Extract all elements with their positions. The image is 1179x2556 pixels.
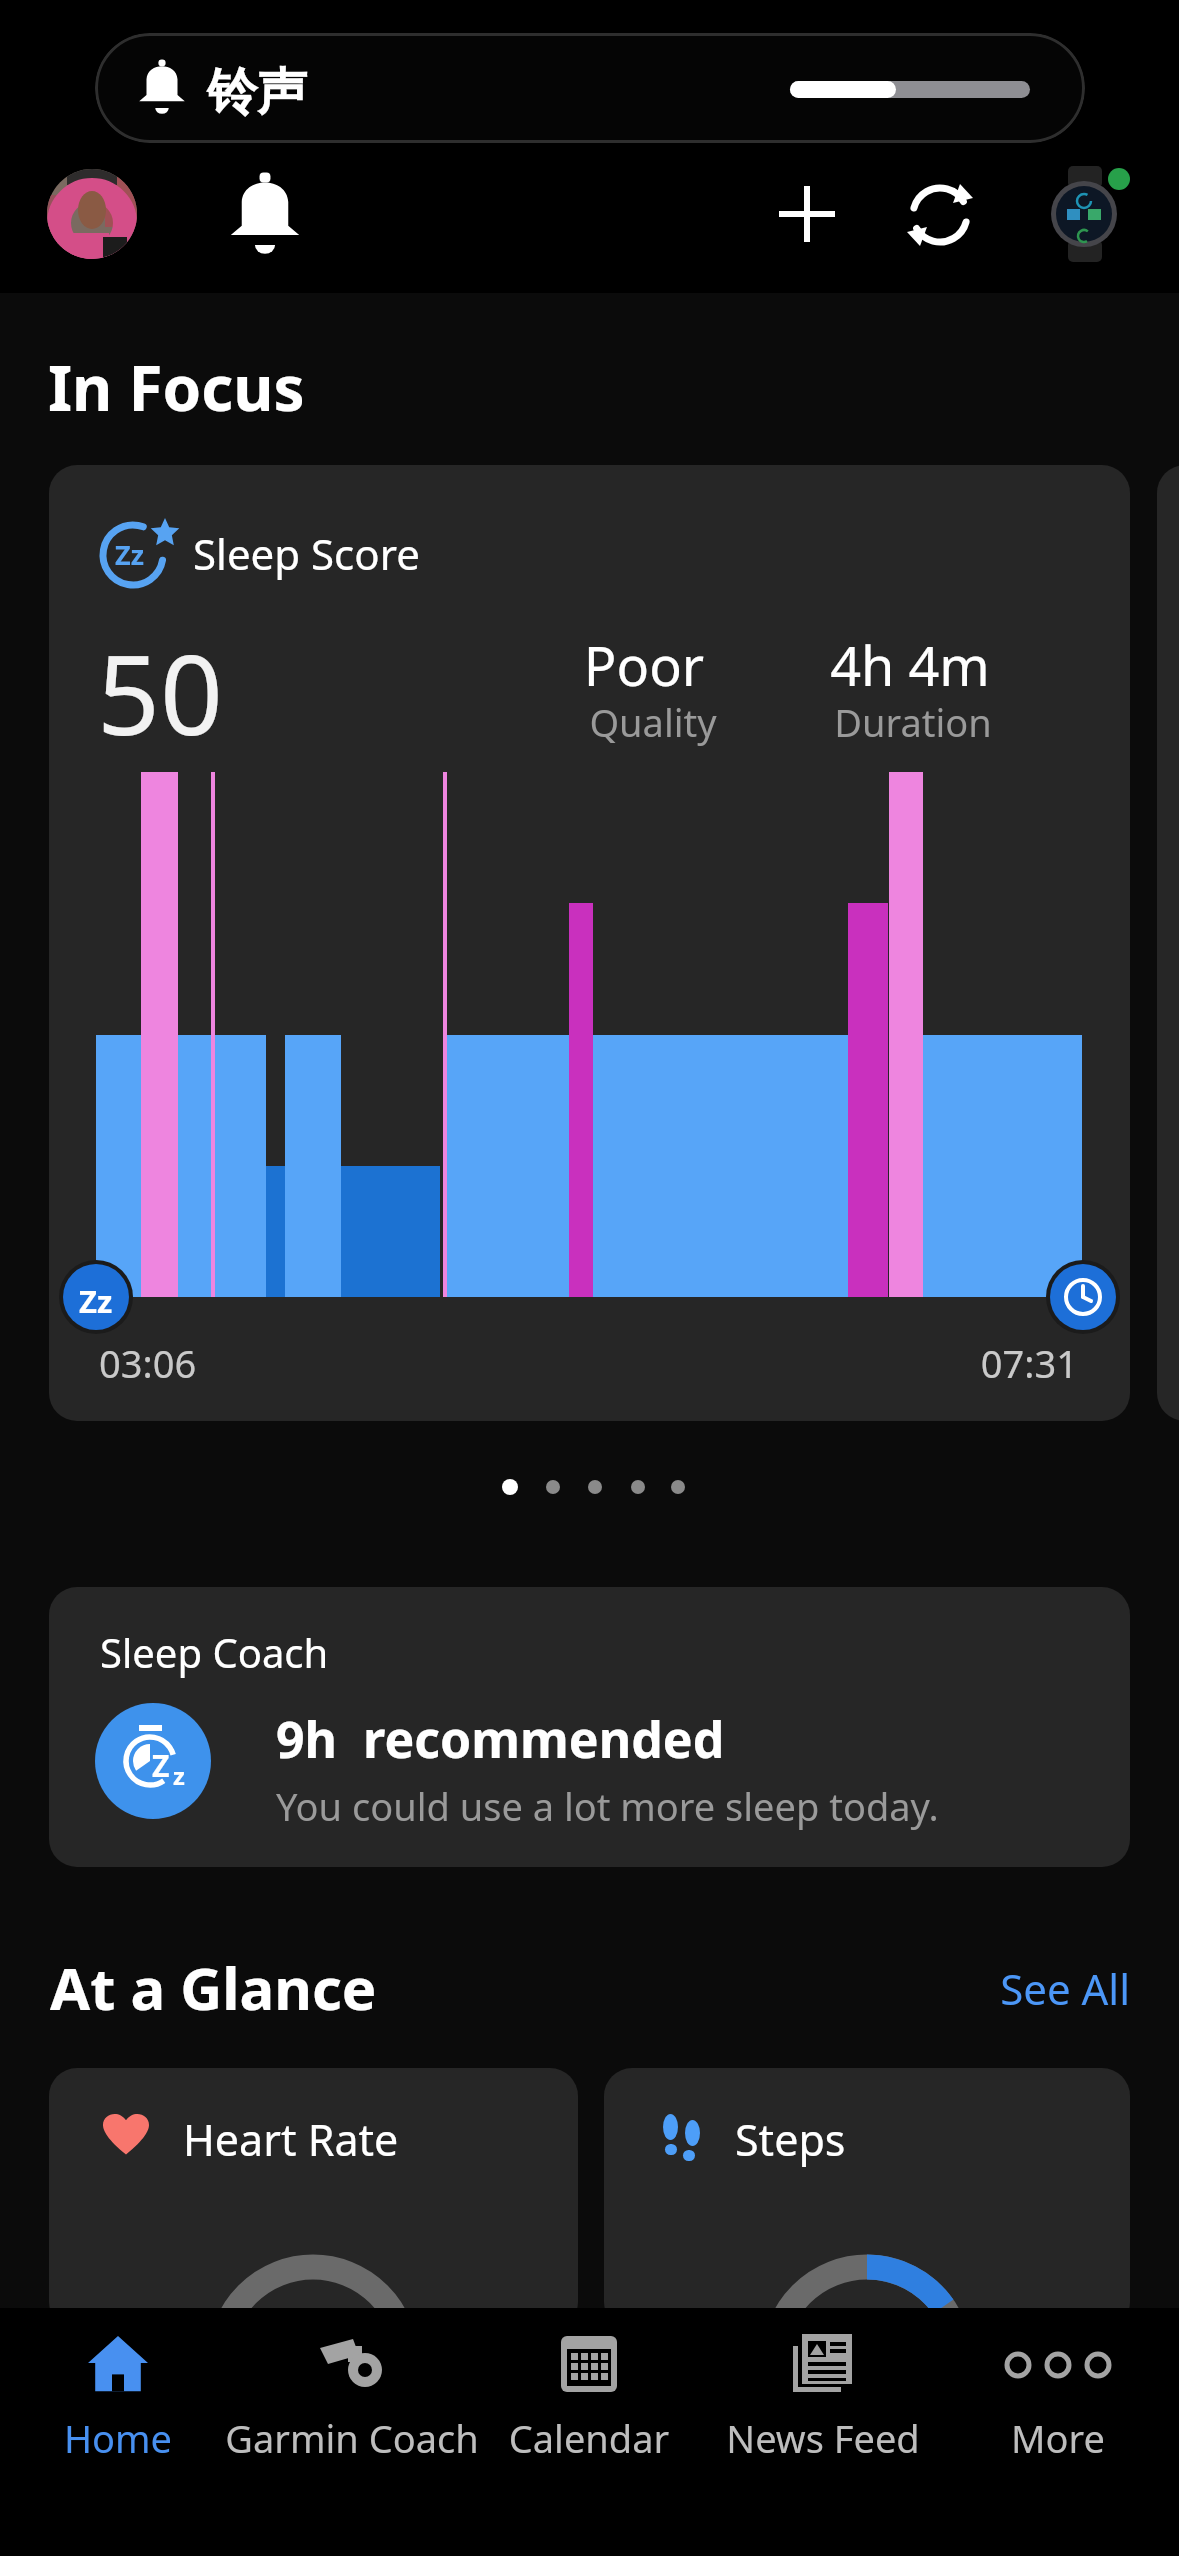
staticText: 03:06 <box>99 1337 197 1389</box>
button[interactable]: Heart Rate <box>49 2068 578 2330</box>
button[interactable]: See All <box>930 1960 1130 2010</box>
button[interactable]: Home <box>38 2328 198 2468</box>
staticText: Poor <box>544 628 744 702</box>
staticText: 50 <box>97 617 223 767</box>
button[interactable]: News Feed <box>698 2328 948 2468</box>
staticText: Zz <box>79 1280 113 1322</box>
staticText: 4h 4m <box>810 628 1010 702</box>
staticText: Steps <box>735 2110 846 2169</box>
button[interactable]: 铃声 <box>95 33 1085 143</box>
staticText: Z <box>152 1745 170 1786</box>
button[interactable]: Sleep Coach <box>49 1587 1130 1867</box>
staticText: In Focus <box>48 345 305 429</box>
staticText: 9h recommended <box>276 1705 725 1773</box>
staticText: News Feed <box>698 2412 948 2464</box>
staticText: Home <box>38 2412 198 2464</box>
button[interactable] <box>228 172 302 258</box>
staticText: More <box>958 2412 1158 2464</box>
button[interactable]: Garmin Coach <box>202 2328 502 2468</box>
staticText: You could use a lot more sleep today. <box>276 1780 939 1832</box>
staticText: Zz <box>115 536 144 573</box>
staticText: 铃声 <box>207 61 307 124</box>
button[interactable] <box>47 169 137 259</box>
button[interactable]: Steps <box>604 2068 1130 2330</box>
staticText: Quality <box>553 696 753 748</box>
staticText: Sleep Coach <box>100 1625 329 1679</box>
button[interactable]: Calendar <box>489 2328 689 2468</box>
button[interactable]: Zz <box>49 465 1130 1421</box>
button[interactable]: More <box>958 2328 1158 2468</box>
staticText: See All <box>930 1960 1130 2010</box>
staticText: At a Glance <box>50 1948 377 2027</box>
staticText: Sleep Score <box>193 525 420 582</box>
button[interactable] <box>1048 166 1124 262</box>
staticText: Calendar <box>489 2412 689 2464</box>
staticText: 07:31 <box>878 1337 1078 1389</box>
staticText: Duration <box>813 696 1013 748</box>
staticText: Heart Rate <box>183 2110 399 2169</box>
staticText: Garmin Coach <box>202 2412 502 2464</box>
staticText: z <box>173 1759 185 1792</box>
button[interactable] <box>905 180 975 250</box>
button[interactable] <box>779 186 835 242</box>
